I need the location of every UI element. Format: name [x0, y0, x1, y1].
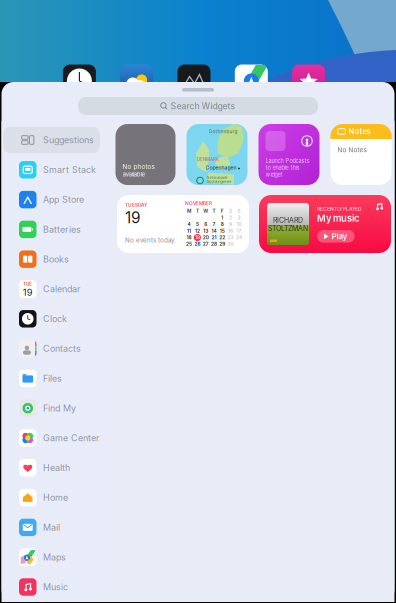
staticText: 11	[187, 228, 191, 234]
staticText: 1	[221, 215, 223, 221]
staticText: 28	[211, 241, 217, 247]
staticText: 20	[203, 235, 209, 240]
staticText: 29	[219, 241, 225, 247]
staticText: TUESDAY	[125, 202, 147, 208]
staticText: DENMARK	[197, 157, 219, 162]
staticText: 23	[228, 235, 234, 240]
staticText: 3	[237, 215, 240, 221]
staticText: Nationalpark Skjoldungernes	[206, 175, 231, 184]
button[interactable]: Find My	[3, 395, 100, 421]
button[interactable]: Mail	[3, 514, 100, 540]
staticText: 30	[228, 241, 234, 247]
button[interactable]: Game Center	[3, 425, 100, 451]
staticText: Files	[43, 373, 62, 384]
staticText: App Store	[43, 194, 84, 205]
staticText: 6	[204, 221, 207, 227]
staticText: Mail	[43, 522, 60, 533]
staticText: 25	[186, 241, 192, 247]
staticText: 5	[196, 221, 199, 227]
staticText: 26	[194, 241, 200, 247]
staticText: Books	[43, 254, 69, 265]
staticText: 21	[211, 235, 216, 240]
staticText: Clock	[43, 313, 67, 324]
staticText: W	[203, 208, 208, 214]
button[interactable]: Music	[3, 574, 100, 600]
button[interactable]: Notes	[330, 124, 391, 185]
staticText: Search Widgets	[170, 101, 235, 111]
staticText: 15	[220, 228, 225, 234]
button[interactable]: Contacts	[3, 336, 100, 362]
staticText: No photos available	[122, 163, 154, 178]
button[interactable]: Search Widgets	[78, 97, 318, 115]
staticText: Contacts	[43, 343, 81, 354]
staticText: 12	[195, 228, 200, 234]
button[interactable]: No photos available	[115, 124, 175, 185]
staticText: RICHARD	[273, 216, 303, 224]
staticText: Smart Stack	[43, 164, 96, 175]
button[interactable]: Clock	[3, 306, 100, 332]
staticText: Launch Podcasts to enable this widget	[265, 158, 309, 178]
staticText: M	[187, 208, 191, 214]
staticText: No events today	[125, 236, 175, 244]
staticText: Find My	[43, 403, 76, 414]
staticText: 27	[203, 241, 209, 247]
staticText: 19	[195, 235, 200, 240]
staticText: Gothenburg	[208, 129, 237, 134]
staticText: STOLTZMAN	[268, 224, 308, 233]
staticText: 9	[229, 221, 232, 227]
button[interactable]: Launch Podcasts to enable this widget	[258, 124, 319, 185]
staticText: No Notes	[337, 146, 366, 154]
button[interactable]: Books	[3, 246, 100, 272]
staticText: 16	[228, 228, 233, 234]
staticText: Home	[43, 492, 68, 503]
staticText: T	[196, 208, 199, 214]
staticText: 10	[236, 221, 241, 227]
button[interactable]: Health	[3, 455, 100, 481]
button[interactable]: RICHARD	[259, 195, 391, 253]
staticText: 22	[219, 235, 225, 240]
staticText: Maps	[43, 552, 66, 563]
staticText: S	[229, 208, 232, 214]
button[interactable]: Home	[3, 485, 100, 511]
button[interactable]: Batteries	[3, 216, 100, 242]
staticText: 4	[188, 221, 191, 227]
button[interactable]: Smart Stack	[3, 157, 100, 183]
staticText: Music	[43, 582, 68, 592]
staticText: S	[237, 208, 240, 214]
staticText: NOVEMBER	[185, 200, 212, 206]
staticText: 19	[125, 208, 141, 227]
staticText: F	[221, 208, 224, 214]
button[interactable]: TUE	[3, 276, 100, 302]
button[interactable]: Gothenburg	[186, 124, 247, 185]
staticText: 18	[187, 235, 192, 240]
staticText: Copenhagen	[205, 164, 236, 171]
staticText: Suggestions	[43, 135, 94, 145]
staticText: Batteries	[43, 224, 81, 235]
button[interactable]: TUESDAY	[117, 195, 249, 253]
staticText: 17	[236, 228, 241, 234]
staticText: Play	[332, 231, 348, 241]
button[interactable]: Files	[3, 365, 100, 391]
staticText: T	[212, 208, 215, 214]
button[interactable]: Maps	[3, 544, 100, 570]
staticText: Health	[43, 462, 70, 473]
staticText: TUE	[23, 282, 32, 287]
staticText: Game Center	[43, 433, 99, 443]
staticText: 8	[221, 221, 224, 227]
staticText: RECENTLY PLAYED	[317, 206, 361, 212]
staticText: 13	[203, 228, 208, 234]
staticText: 24	[236, 235, 242, 240]
button[interactable]: App Store	[3, 187, 100, 213]
button[interactable]: Suggestions	[3, 127, 100, 153]
staticText: 7	[212, 221, 215, 227]
staticText: 2	[229, 215, 232, 221]
staticText: 19	[23, 287, 33, 298]
staticText: Calendar	[43, 284, 80, 294]
staticText: My music	[317, 213, 359, 224]
staticText: Notes	[348, 127, 370, 136]
staticText: 14	[211, 228, 216, 234]
